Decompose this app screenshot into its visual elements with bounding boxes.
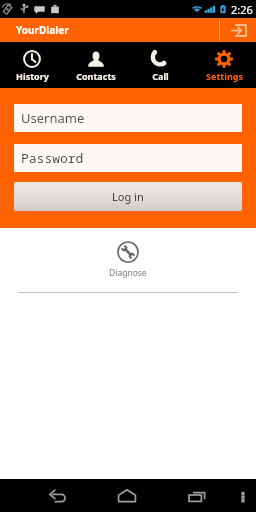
button[interactable]: More options (232, 479, 254, 512)
staticText: Contacts (76, 70, 116, 82)
staticText: Call (152, 70, 169, 82)
button[interactable]: Username (14, 104, 242, 132)
button[interactable]: Home (104, 479, 150, 512)
button[interactable]: Diagnose (95, 228, 161, 292)
button[interactable]: Contacts (64, 42, 128, 88)
staticText: Password (21, 149, 84, 167)
staticText: Username (21, 109, 85, 127)
staticText: YourDialer (16, 23, 69, 37)
button[interactable]: Back (34, 479, 80, 512)
button[interactable]: History (0, 42, 64, 88)
button[interactable]: Call (128, 42, 192, 88)
button[interactable]: Password (14, 144, 242, 172)
staticText: 2:26 (231, 2, 253, 17)
button[interactable]: Log in (14, 182, 242, 211)
staticText: Settings (206, 70, 243, 82)
staticText: Log in (112, 189, 144, 204)
button[interactable]: Recent apps (174, 479, 220, 512)
staticText: History (16, 70, 49, 82)
staticText: Diagnose (109, 267, 147, 279)
button[interactable]: Settings (192, 42, 256, 88)
button[interactable]: Log out (220, 18, 256, 42)
